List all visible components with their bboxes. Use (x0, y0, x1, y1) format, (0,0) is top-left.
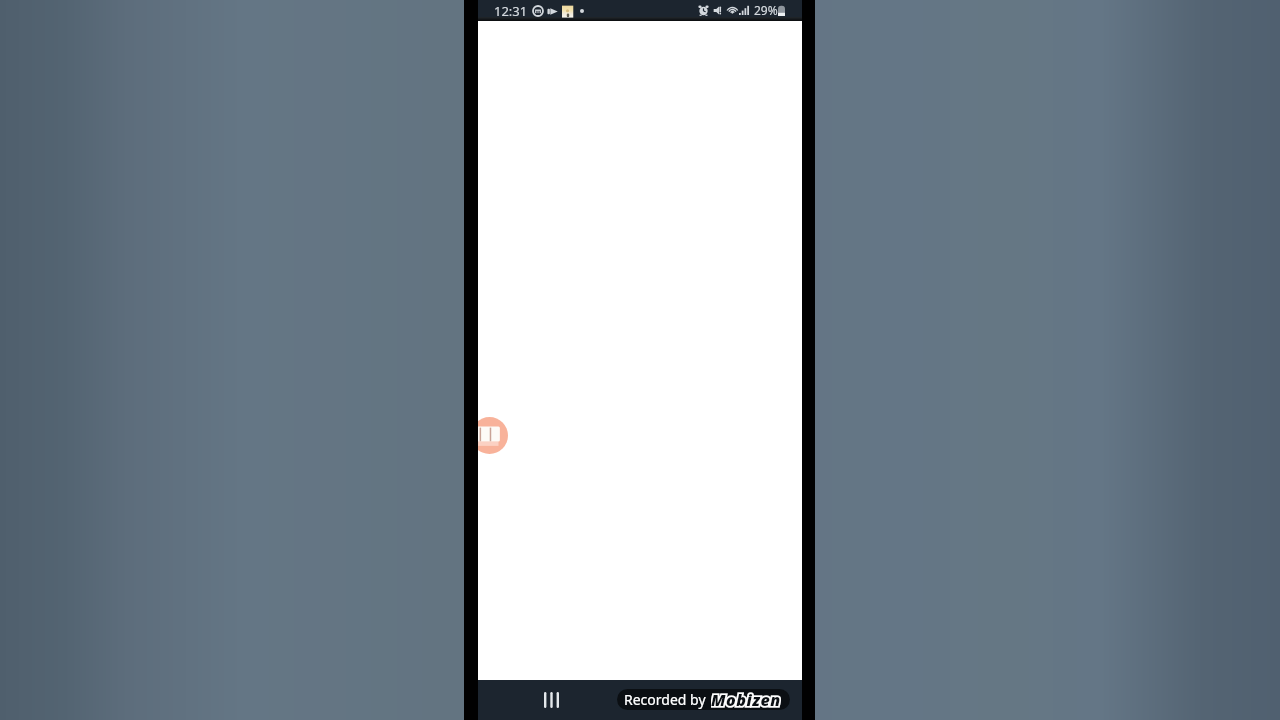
staticText: Recorded by (624, 690, 706, 709)
staticText: Mobizen (711, 689, 781, 710)
button[interactable]: Recents (529, 680, 573, 720)
button[interactable]: Mobizen recorder (478, 417, 508, 454)
staticText: 29% (754, 2, 778, 18)
staticText: 12:31 (494, 2, 528, 20)
staticText: Mobizen (711, 689, 781, 710)
